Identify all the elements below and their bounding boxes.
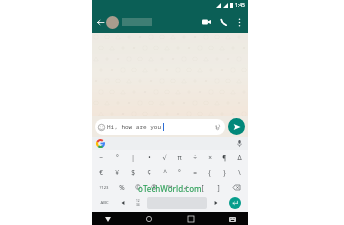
staticText: \: [238, 168, 241, 177]
staticText: $: [131, 168, 135, 177]
button[interactable]: Move cursor right: [208, 197, 223, 209]
button[interactable]: ABC: [93, 197, 115, 209]
staticText: 34: [136, 203, 140, 207]
button[interactable]: $: [125, 165, 141, 180]
staticText: Δ: [237, 153, 242, 162]
staticText: ~: [99, 153, 103, 162]
button[interactable]: Send: [228, 118, 245, 135]
staticText: }: [223, 168, 226, 177]
button[interactable]: ™: [162, 180, 178, 195]
staticText: π: [177, 153, 182, 162]
button[interactable]: ^: [157, 165, 172, 180]
button[interactable]: {: [202, 165, 217, 180]
button[interactable]: Enter: [229, 197, 241, 209]
staticText: [: [201, 183, 204, 192]
staticText: °: [178, 168, 181, 177]
staticText: ^: [163, 168, 167, 177]
button[interactable]: ¥: [109, 165, 125, 180]
staticText: Hi, how are you: [107, 123, 162, 131]
staticText: |: [131, 153, 135, 162]
staticText: ¢: [147, 168, 151, 177]
button[interactable]: €: [93, 165, 109, 180]
staticText: 12: [136, 199, 140, 203]
staticText: ✓: [183, 184, 189, 192]
staticText: √: [162, 154, 167, 162]
staticText: %: [119, 183, 125, 192]
button[interactable]: Hi, how are you: [95, 119, 225, 135]
button[interactable]: Δ: [232, 150, 247, 165]
staticText: °: [116, 153, 119, 162]
button[interactable]: Back: [102, 213, 114, 225]
button[interactable]: √: [157, 150, 172, 165]
staticText: ÷: [193, 153, 197, 162]
button[interactable]: Recents: [185, 213, 197, 225]
staticText: ™: [167, 183, 173, 192]
button[interactable]: More options: [233, 16, 245, 28]
button[interactable]: Numbers: [130, 197, 146, 209]
button[interactable]: ®: [146, 180, 162, 195]
button[interactable]: }: [217, 165, 232, 180]
staticText: ¶: [222, 153, 227, 162]
staticText: •: [148, 153, 151, 162]
button[interactable]: [: [194, 180, 210, 195]
button[interactable]: ?123: [93, 180, 114, 195]
button[interactable]: Video call: [200, 16, 212, 28]
button[interactable]: π: [172, 150, 187, 165]
staticText: =: [193, 168, 197, 177]
button[interactable]: °: [109, 150, 125, 165]
button[interactable]: ÷: [187, 150, 202, 165]
staticText: ]: [217, 183, 220, 192]
button[interactable]: Contact photo: [106, 16, 119, 29]
button[interactable]: Switch keyboard: [226, 213, 238, 225]
button[interactable]: Back: [95, 17, 106, 28]
staticText: ×: [208, 153, 212, 162]
button[interactable]: ×: [202, 150, 217, 165]
button[interactable]: =: [187, 165, 202, 180]
button[interactable]: ¢: [141, 165, 157, 180]
staticText: ¥: [115, 168, 119, 177]
staticText: ©: [135, 183, 141, 192]
button[interactable]: Voice call: [217, 16, 229, 28]
button[interactable]: |: [125, 150, 141, 165]
button[interactable]: Move cursor left: [115, 197, 130, 209]
button[interactable]: ]: [210, 180, 226, 195]
button[interactable]: ¶: [217, 150, 232, 165]
button[interactable]: Voice input: [235, 139, 244, 148]
staticText: ?123: [99, 185, 109, 191]
button[interactable]: ✓: [178, 180, 194, 195]
button[interactable]: Attach: [214, 123, 222, 131]
staticText: ®: [151, 183, 157, 192]
button[interactable]: °: [172, 165, 187, 180]
button[interactable]: •: [141, 150, 157, 165]
staticText: €: [99, 168, 103, 177]
button[interactable]: Google search: [96, 139, 105, 148]
button[interactable]: ©: [130, 180, 146, 195]
button[interactable]: Backspace: [226, 180, 247, 195]
staticText: {: [208, 168, 211, 177]
staticText: oTechWorld.com: [138, 183, 202, 194]
staticText: 1:45: [235, 2, 245, 9]
staticText: ABC: [100, 200, 109, 206]
button[interactable]: Home: [143, 213, 155, 225]
button[interactable]: %: [114, 180, 130, 195]
button[interactable]: ~: [93, 150, 109, 165]
button[interactable]: \: [232, 165, 247, 180]
